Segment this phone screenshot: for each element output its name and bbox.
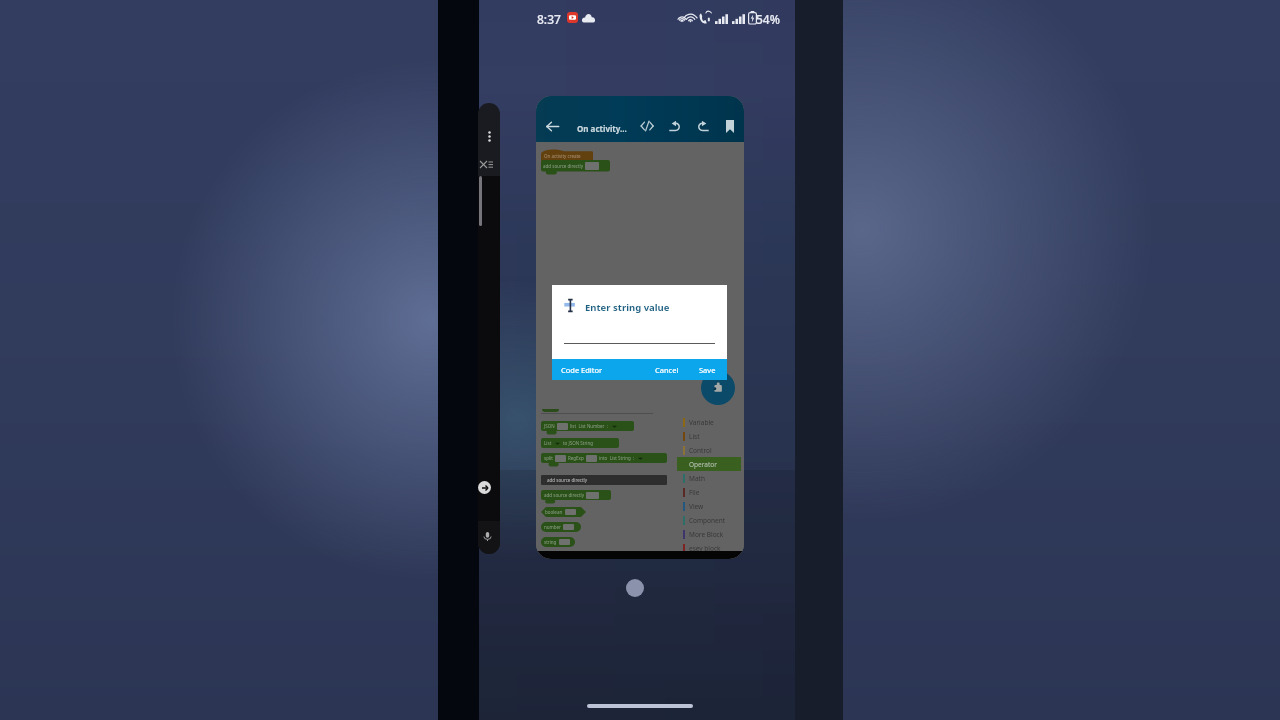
staticText: File	[689, 488, 700, 497]
staticText: List	[689, 432, 700, 441]
button[interactable]: boolean	[545, 507, 582, 517]
button[interactable]: Redo	[693, 116, 713, 136]
button[interactable]: Back	[536, 96, 744, 559]
staticText: to JSON String	[563, 440, 593, 446]
button[interactable]: Component	[677, 513, 741, 527]
button[interactable]: View	[677, 499, 741, 513]
button[interactable]: Control	[677, 443, 741, 457]
staticText: add source directly	[544, 492, 584, 498]
button[interactable]: Add block	[701, 371, 735, 405]
staticText: Cancel	[655, 365, 679, 375]
staticText: Operator	[689, 460, 717, 469]
button[interactable]: List	[677, 429, 741, 443]
button[interactable]: string	[544, 537, 572, 547]
staticText: List	[544, 440, 552, 446]
button[interactable]: Operator	[677, 457, 741, 471]
staticText: JSON	[544, 423, 555, 429]
staticText: list List Number :	[570, 423, 609, 429]
button[interactable]: Variable	[677, 415, 741, 429]
staticText: into List String :	[599, 455, 635, 461]
button[interactable]: add source directly	[541, 475, 667, 485]
staticText: Code Editor	[561, 365, 603, 375]
button[interactable]: File	[677, 485, 741, 499]
staticText: Component	[689, 516, 726, 525]
staticText: string	[544, 539, 557, 545]
button[interactable]	[478, 103, 500, 554]
staticText: esey block	[689, 544, 721, 553]
staticText: Variable	[689, 418, 714, 427]
button[interactable]: number	[544, 522, 578, 532]
staticText: number	[544, 524, 561, 530]
staticText: View	[689, 502, 704, 511]
button[interactable]: Back	[544, 118, 561, 135]
staticText: Math	[689, 474, 705, 483]
button[interactable]: Bookmark	[720, 116, 740, 136]
button[interactable]: JSON	[543, 421, 632, 431]
button[interactable]: add source directly	[543, 490, 609, 500]
staticText: More Block	[689, 530, 724, 539]
staticText: Enter string value	[585, 301, 670, 314]
button[interactable]: Undo	[664, 116, 684, 136]
button[interactable]: Save	[699, 359, 721, 380]
button[interactable]: split	[543, 453, 665, 463]
staticText: Save	[699, 365, 716, 375]
button[interactable]: add source directly	[543, 160, 608, 172]
staticText: boolean	[545, 509, 563, 515]
button[interactable]: Cancel	[655, 359, 683, 380]
button[interactable]: Math	[677, 471, 741, 485]
staticText: 54%	[756, 11, 780, 27]
staticText: add source directly	[547, 477, 587, 483]
button[interactable]: More Block	[677, 527, 741, 541]
staticText: RegExp	[568, 455, 584, 461]
staticText: On activity...	[577, 123, 627, 134]
button[interactable]: Source code	[637, 116, 657, 136]
staticText: 8:37	[537, 11, 561, 27]
button[interactable]: List	[543, 438, 617, 448]
button[interactable]: On activity create	[541, 149, 593, 161]
staticText: split	[544, 455, 553, 461]
staticText: On activity create	[544, 153, 581, 159]
staticText: Control	[689, 446, 712, 455]
button[interactable]: esey block	[677, 541, 741, 555]
staticText: add source directly	[543, 163, 583, 169]
button[interactable]: Code Editor	[561, 359, 608, 380]
